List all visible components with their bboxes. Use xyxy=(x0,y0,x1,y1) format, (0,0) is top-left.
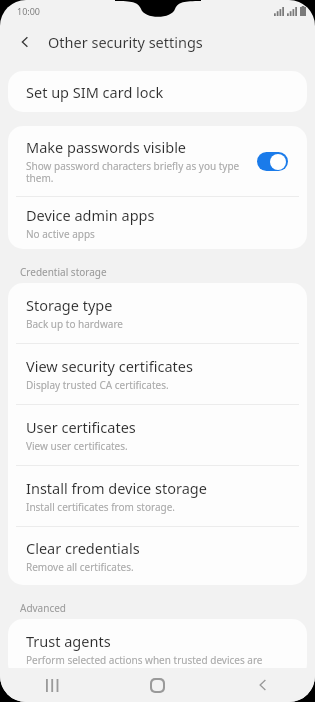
button[interactable]: Back xyxy=(8,25,42,59)
button[interactable]: Recents xyxy=(0,668,105,702)
button[interactable]: View security certificates xyxy=(8,344,307,404)
staticText: Clear credentials xyxy=(26,538,140,558)
button[interactable]: Storage type xyxy=(8,283,307,343)
staticText: View security certificates xyxy=(26,356,193,376)
staticText: Make passwords visible xyxy=(26,137,187,157)
staticText: View user certificates. xyxy=(26,439,128,453)
staticText: Trust agents xyxy=(26,631,111,651)
button[interactable]: Back xyxy=(210,668,315,702)
staticText: Set up SIM card lock xyxy=(26,82,164,102)
staticText: Perform selected actions when trusted de… xyxy=(26,653,263,667)
staticText: Storage type xyxy=(26,295,113,315)
button[interactable]: Install from device storage xyxy=(8,466,307,526)
button[interactable]: User certificates xyxy=(8,405,307,465)
staticText: Install from device storage xyxy=(26,478,207,498)
staticText: No active apps xyxy=(26,227,95,241)
button[interactable]: Trust agents xyxy=(8,619,307,679)
staticText: Display trusted CA certificates. xyxy=(26,378,169,392)
staticText: Remove all certificates. xyxy=(26,560,134,574)
staticText: Device admin apps xyxy=(26,205,155,225)
staticText: Credential storage xyxy=(20,265,107,279)
staticText: Back up to hardware xyxy=(26,317,123,331)
staticText: Show password characters briefly as you … xyxy=(26,159,247,185)
staticText: User certificates xyxy=(26,417,136,437)
button[interactable]: Make passwords visible toggle xyxy=(257,152,288,171)
button[interactable]: Make passwords visible xyxy=(8,126,307,196)
staticText: 10:00 xyxy=(17,5,41,17)
button[interactable]: Set up SIM card lock xyxy=(8,71,307,112)
button[interactable]: Device admin apps xyxy=(8,197,307,249)
button[interactable]: Home xyxy=(105,668,210,702)
staticText: Install certificates from storage. xyxy=(26,500,175,514)
staticText: Advanced xyxy=(20,601,66,615)
button[interactable]: Clear credentials xyxy=(8,527,307,585)
staticText: Other security settings xyxy=(48,32,203,52)
